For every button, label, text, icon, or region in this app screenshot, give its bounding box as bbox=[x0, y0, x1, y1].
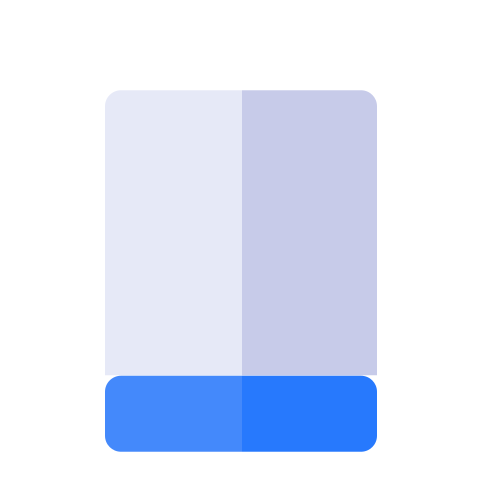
button[interactable]: Document bbox=[105, 90, 377, 452]
